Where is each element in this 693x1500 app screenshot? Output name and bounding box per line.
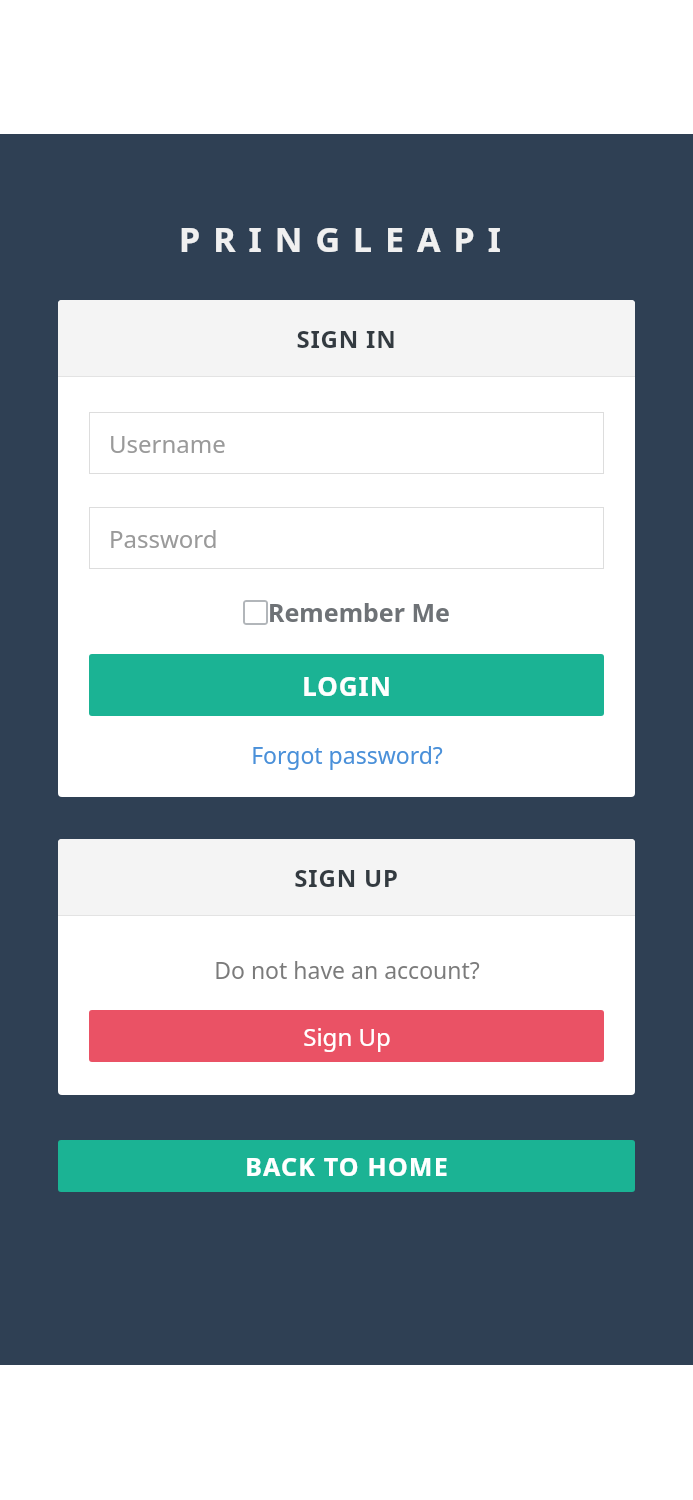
button[interactable]: Forgot password? [89, 739, 604, 770]
button[interactable]: Username [89, 412, 604, 474]
staticText: SIGN UP [294, 861, 399, 894]
staticText: PRINGLEAPI [179, 216, 514, 262]
staticText: Password [109, 522, 218, 555]
button[interactable]: BACK TO HOME [58, 1140, 635, 1192]
staticText: BACK TO HOME [245, 1149, 449, 1183]
button[interactable]: Password [89, 507, 604, 569]
staticText: Forgot password? [251, 739, 443, 770]
staticText: LOGIN [302, 668, 392, 703]
staticText: Remember Me [268, 595, 450, 629]
button[interactable]: Sign Up [89, 1010, 604, 1062]
staticText: Username [109, 427, 226, 460]
button[interactable]: LOGIN [89, 654, 604, 716]
staticText: SIGN IN [296, 322, 397, 355]
button[interactable]: Remember Me [89, 595, 604, 629]
staticText: Do not have an account? [214, 954, 480, 985]
staticText: Sign Up [303, 1020, 391, 1053]
